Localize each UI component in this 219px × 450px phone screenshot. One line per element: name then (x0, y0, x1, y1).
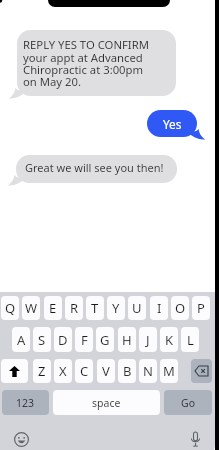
button[interactable]: X (54, 359, 72, 383)
staticText: G (100, 331, 110, 349)
button[interactable]: F (75, 327, 93, 352)
button[interactable]: P (192, 296, 210, 320)
staticText: Go (181, 396, 195, 410)
button[interactable]: Delete (191, 359, 212, 383)
button[interactable]: Shift (1, 359, 28, 383)
staticText: H (122, 331, 132, 349)
staticText: U (132, 299, 142, 317)
staticText: I (157, 299, 162, 317)
staticText: O (175, 299, 186, 317)
staticText: S (38, 331, 46, 349)
button[interactable]: R (65, 296, 83, 320)
button[interactable]: 123 (2, 390, 49, 415)
button[interactable]: M (160, 359, 178, 383)
staticText: space (92, 396, 121, 410)
staticText: R (70, 299, 79, 317)
button[interactable]: Z (33, 359, 51, 383)
button[interactable]: D (54, 327, 72, 352)
button[interactable]: S (33, 327, 51, 352)
staticText: W (25, 299, 38, 317)
staticText: Y (112, 299, 120, 317)
button[interactable]: C (75, 359, 93, 383)
button[interactable]: U (128, 296, 146, 320)
staticText: Yes (163, 116, 182, 132)
staticText: REPLY YES TO CONFIRM your appt at Advanc… (23, 37, 149, 89)
button[interactable]: N (139, 359, 157, 383)
button[interactable]: T (86, 296, 104, 320)
staticText: J (146, 331, 150, 349)
staticText: Q (5, 299, 16, 317)
button[interactable]: Y (107, 296, 125, 320)
staticText: 123 (16, 396, 35, 410)
button[interactable]: K (160, 327, 178, 352)
button[interactable]: I (150, 296, 168, 320)
button[interactable]: Q (1, 296, 19, 320)
staticText: L (187, 331, 194, 349)
staticText: A (17, 331, 26, 349)
staticText: Z (38, 362, 46, 380)
button[interactable]: A (12, 327, 30, 352)
button[interactable]: B (118, 359, 136, 383)
staticText: D (58, 331, 68, 349)
staticText: Great we will see you then! (25, 160, 164, 175)
staticText: E (49, 299, 57, 317)
staticText: M (163, 362, 175, 380)
staticText: K (165, 331, 174, 349)
staticText: P (197, 299, 205, 317)
button[interactable]: Go (164, 390, 212, 415)
staticText: F (81, 331, 88, 349)
staticText: B (123, 362, 132, 380)
button[interactable]: O (171, 296, 189, 320)
staticText: T (91, 299, 99, 317)
button[interactable]: G (96, 327, 114, 352)
button[interactable]: J (139, 327, 157, 352)
button[interactable]: V (97, 359, 115, 383)
staticText: C (80, 362, 89, 380)
button[interactable]: E (44, 296, 62, 320)
button[interactable]: Emoji (12, 430, 30, 448)
button[interactable]: W (22, 296, 40, 320)
button[interactable]: Dictate (186, 430, 204, 448)
staticText: V (102, 362, 110, 380)
button[interactable]: space (53, 390, 160, 415)
staticText: N (143, 362, 153, 380)
button[interactable]: L (181, 327, 199, 352)
staticText: X (59, 362, 67, 380)
button[interactable]: H (118, 327, 136, 352)
